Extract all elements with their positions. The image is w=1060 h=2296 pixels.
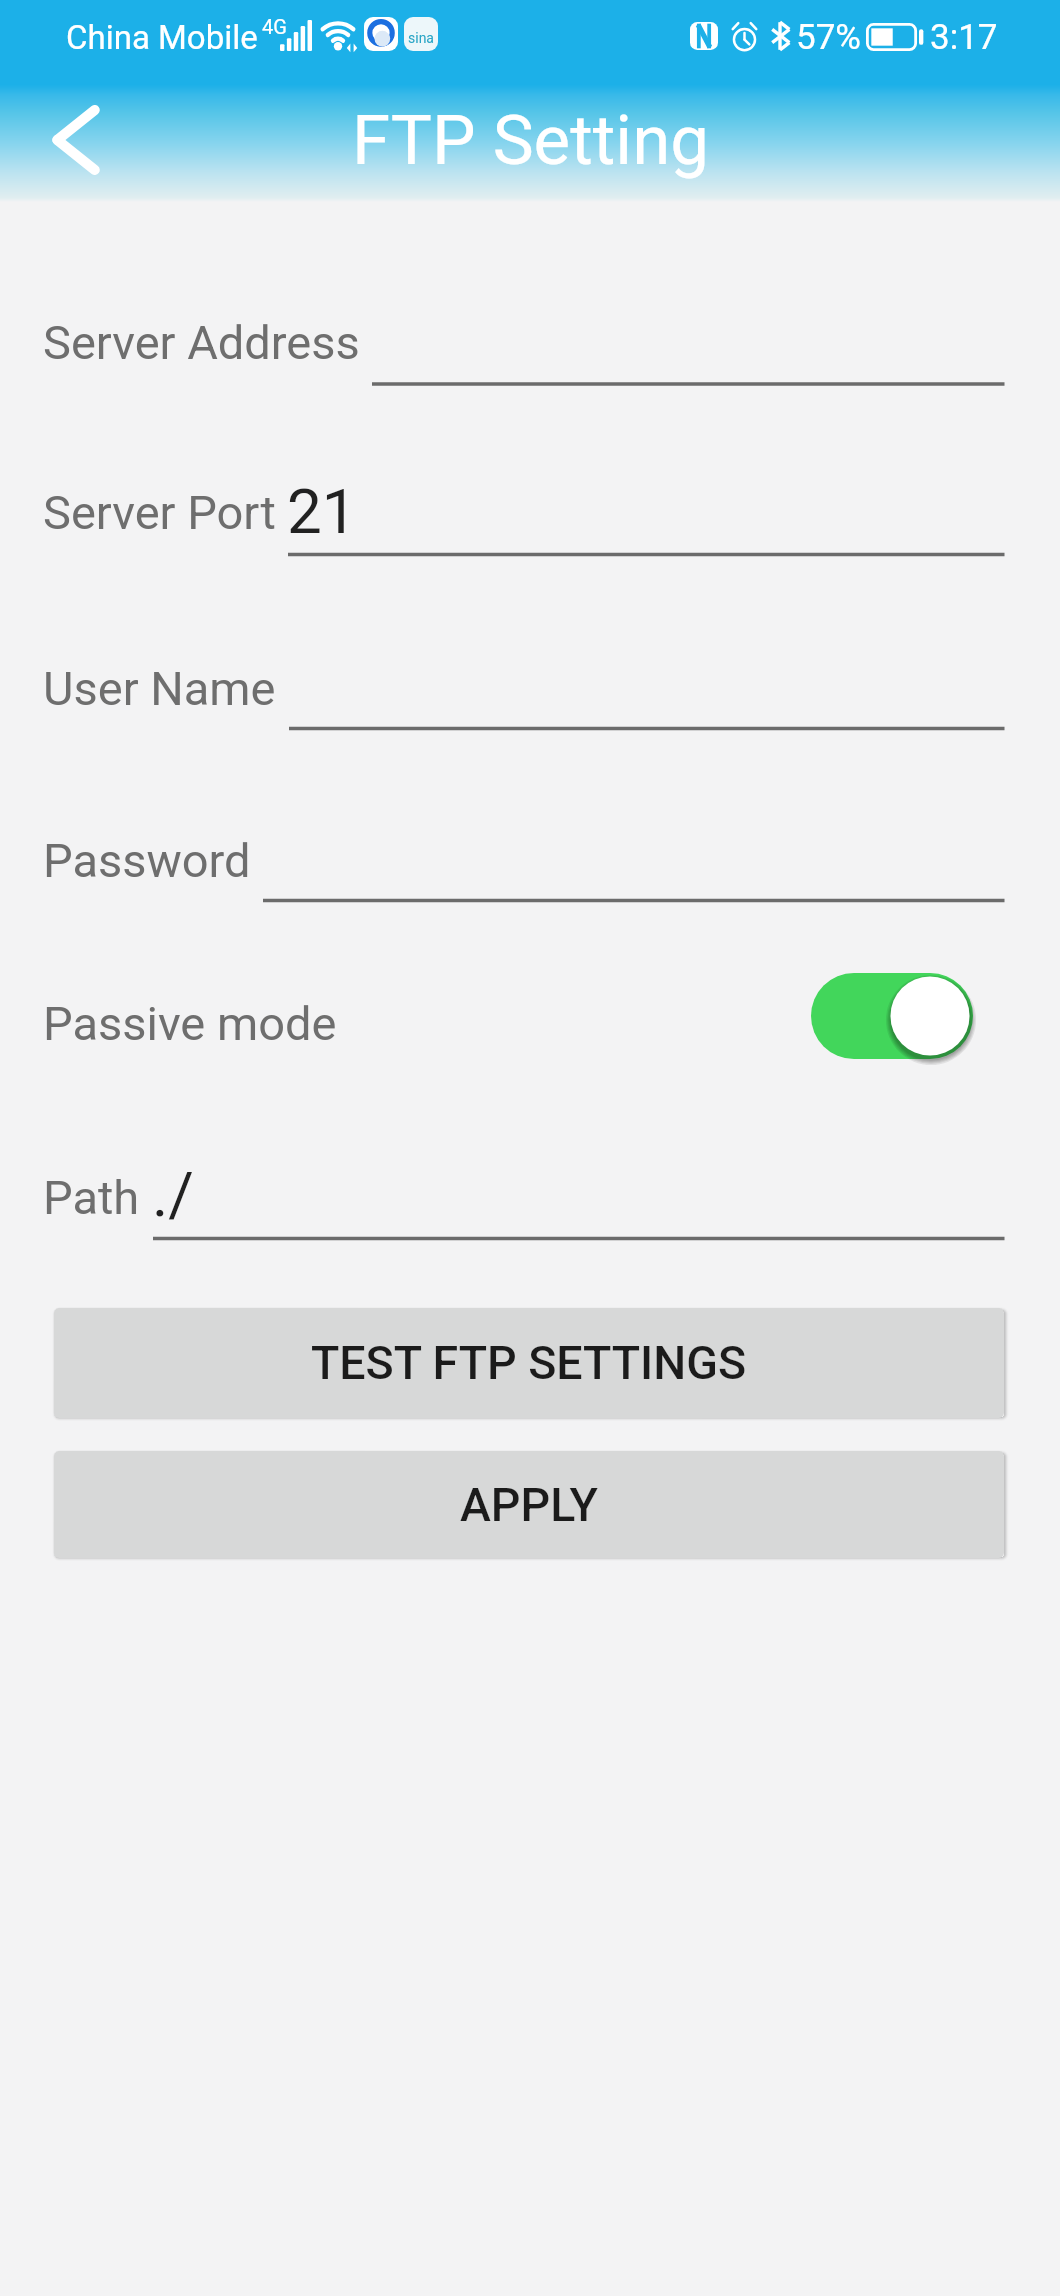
staticText: FTP Setting: [352, 100, 709, 181]
button[interactable]: TEST FTP SETTINGS: [54, 1308, 1004, 1418]
staticText: User Name: [43, 661, 276, 716]
staticText: 4G: [262, 15, 287, 38]
staticText: Passive mode: [43, 996, 337, 1051]
staticText: Password: [43, 833, 251, 888]
button[interactable]: APPLY: [54, 1451, 1004, 1558]
button[interactable]: User Name: [0, 626, 1060, 750]
staticText: TEST FTP SETTINGS: [311, 1336, 747, 1390]
button[interactable]: Server Port: [0, 450, 1060, 574]
button[interactable]: Passive mode: [0, 961, 1060, 1085]
staticText: 57%: [796, 17, 861, 58]
button[interactable]: Password: [0, 798, 1060, 922]
staticText: ./: [152, 1158, 194, 1231]
button[interactable]: Path: [0, 1135, 1060, 1259]
staticText: APPLY: [460, 1478, 598, 1532]
staticText: sina: [408, 30, 434, 46]
button[interactable]: Back: [10, 85, 120, 195]
staticText: 3:17: [930, 17, 998, 58]
staticText: Server Port: [43, 485, 276, 540]
button[interactable]: Server Address: [0, 280, 1060, 404]
staticText: China Mobile: [66, 18, 258, 57]
button[interactable]: Passive mode toggle: [811, 973, 973, 1059]
staticText: 21: [287, 475, 357, 548]
staticText: Path: [43, 1170, 140, 1225]
staticText: Server Address: [43, 315, 360, 370]
